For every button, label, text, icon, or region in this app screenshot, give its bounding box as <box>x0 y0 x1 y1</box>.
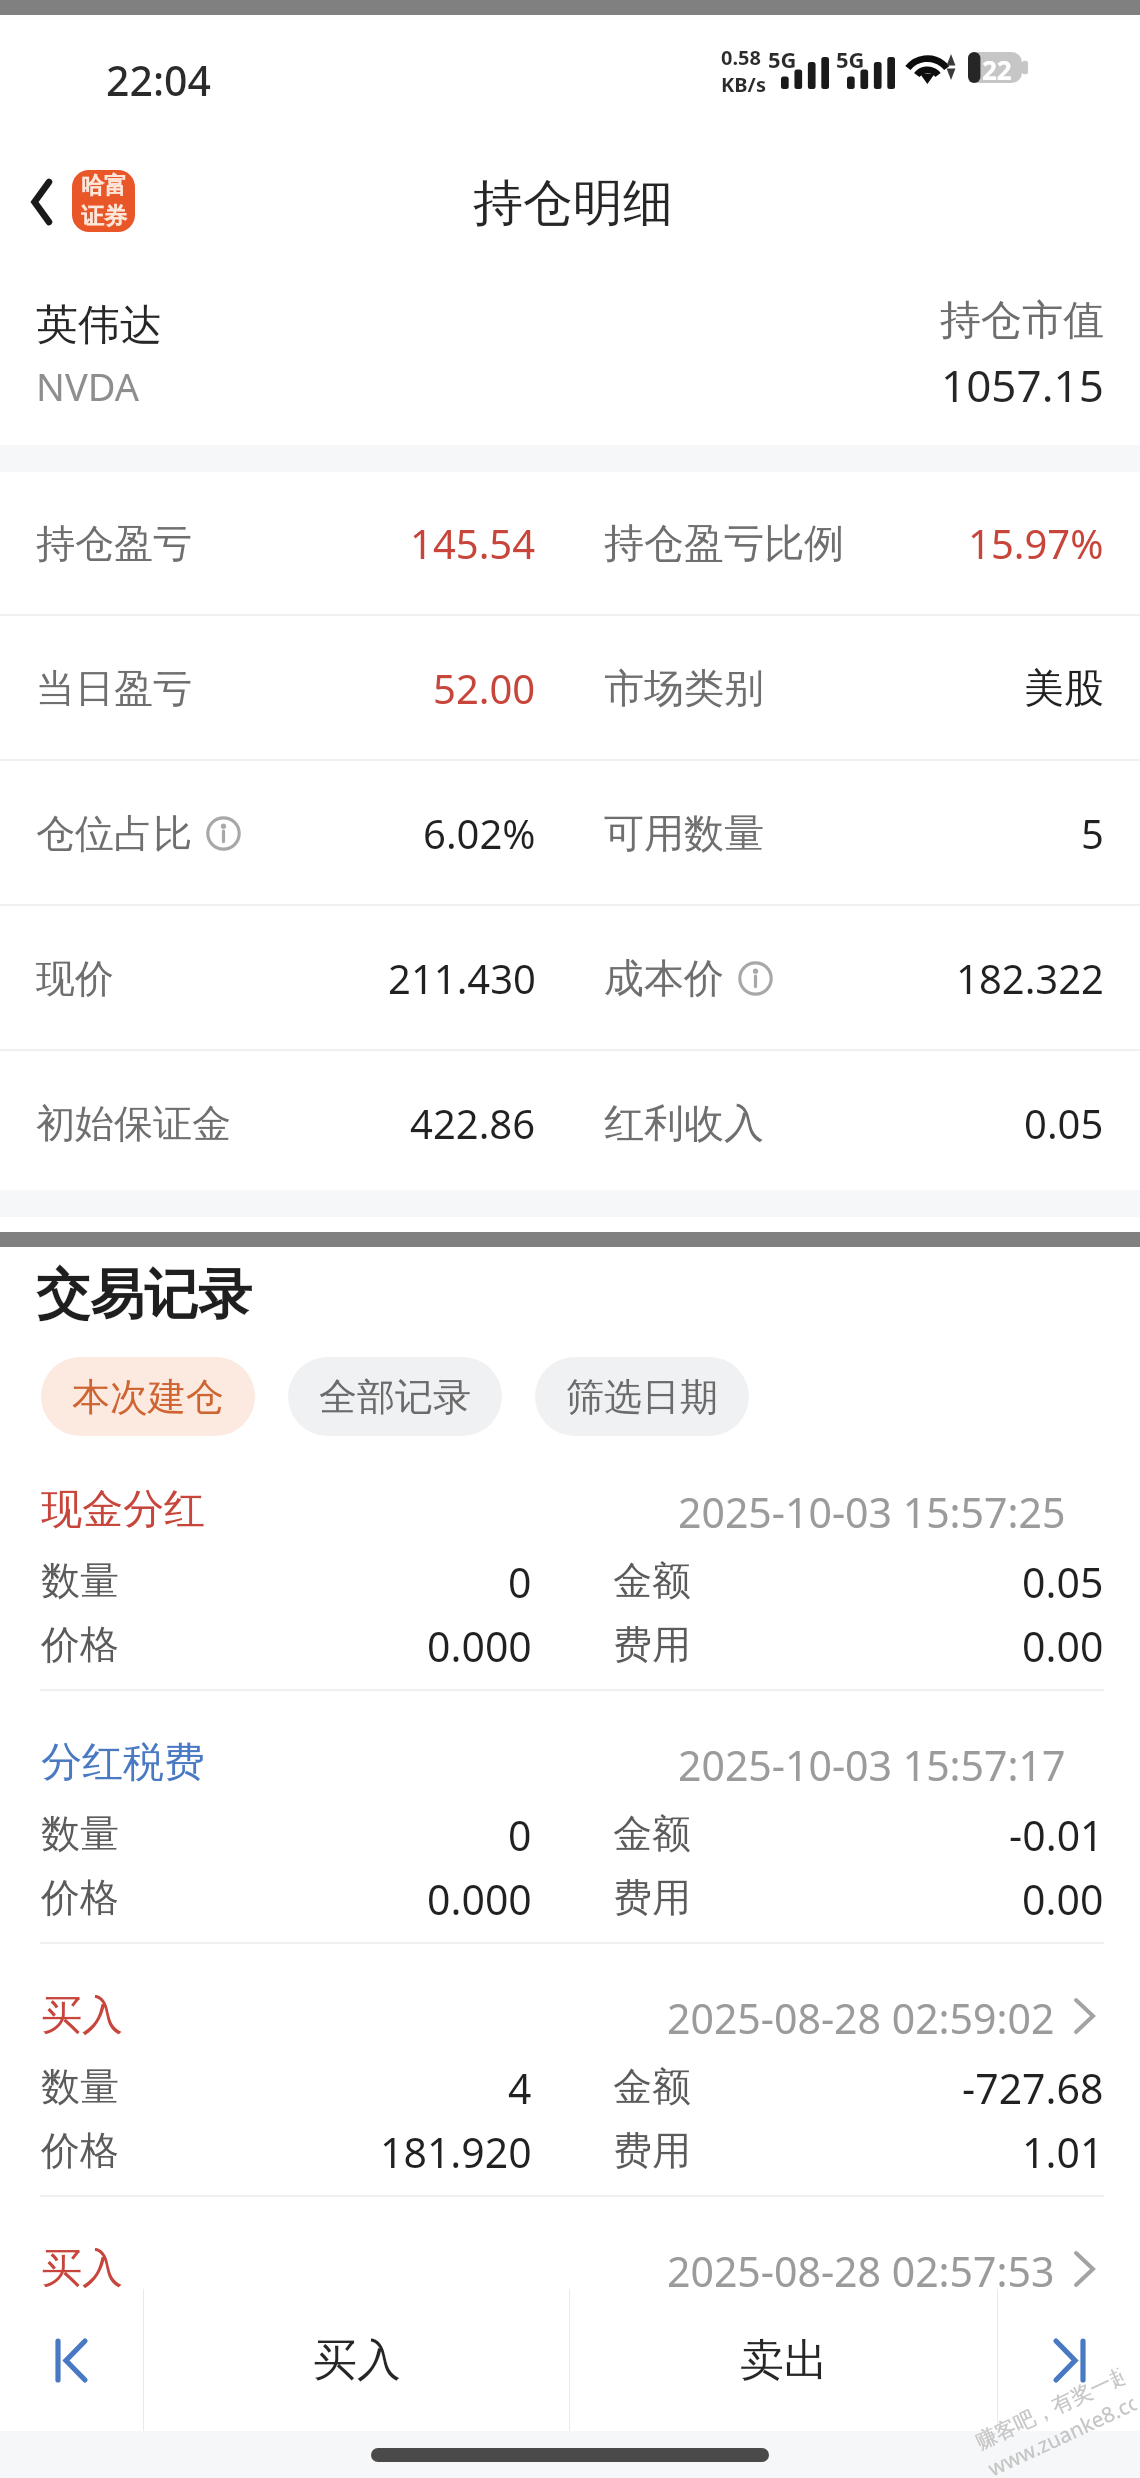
button[interactable]: 买入 <box>144 2289 569 2431</box>
staticText: 现金分红 <box>41 1484 205 1536</box>
staticText: 0.000 <box>427 1871 532 1923</box>
button[interactable]: 分红税费 <box>0 1737 1140 1990</box>
staticText: 0.00 <box>1022 1871 1104 1923</box>
staticText: 145.54 <box>410 516 536 570</box>
staticText: 费用 <box>613 2126 691 2175</box>
staticText: 全部记录 <box>319 1373 471 1421</box>
button[interactable]: Hafu Securities <box>72 170 135 232</box>
staticText: 初始保证金 <box>36 1099 231 1148</box>
staticText: 2025-10-03 15:57:25 <box>678 1484 1066 1536</box>
staticText: 费用 <box>613 1620 691 1669</box>
staticText: 0.05 <box>1024 1096 1104 1150</box>
staticText: 金额 <box>613 1809 691 1858</box>
staticText: 2025-08-28 02:57:53 <box>667 2243 1055 2295</box>
staticText: 0 <box>508 1554 532 1606</box>
staticText: 证券 <box>81 202 127 231</box>
staticText: 持仓盈亏 <box>36 519 192 568</box>
staticText: 仓位占比 <box>36 809 192 858</box>
staticText: 182.322 <box>956 951 1104 1005</box>
staticText: 181.920 <box>380 2124 532 2176</box>
button[interactable]: Last page <box>998 2289 1140 2431</box>
staticText: 0.000 <box>427 1618 532 1670</box>
staticText: 4 <box>508 2060 532 2112</box>
button[interactable]: 买入 <box>0 1990 1140 2243</box>
staticText: 买入 <box>313 2333 401 2388</box>
staticText: 数量 <box>41 1556 119 1605</box>
staticText: 买入 <box>41 1990 123 2042</box>
staticText: 英伟达 <box>36 299 162 352</box>
staticText: www.zuanke8.com <box>983 2389 1140 2478</box>
staticText: 22:04 <box>106 52 211 108</box>
staticText: 211.430 <box>388 951 536 1005</box>
staticText: 2025-10-03 15:57:17 <box>678 1737 1066 1789</box>
staticText: 价格 <box>41 2126 119 2175</box>
staticText: 交易记录 <box>36 1261 252 1329</box>
staticText: 持仓明细 <box>473 172 673 235</box>
button[interactable]: 卖出 <box>570 2289 997 2431</box>
staticText: 赚客吧，有奖一起赚！ <box>971 2364 1127 2455</box>
staticText: 22 <box>982 52 1012 83</box>
staticText: 金额 <box>613 2062 691 2111</box>
staticText: 分红税费 <box>41 1737 205 1789</box>
staticText: 422.86 <box>410 1096 536 1150</box>
staticText: 1.01 <box>1022 2124 1104 2176</box>
staticText: 金额 <box>613 1556 691 1605</box>
staticText: 0.58 <box>721 44 761 71</box>
staticText: 当日盈亏 <box>36 664 192 713</box>
staticText: 美股 <box>1024 663 1104 713</box>
staticText: 5G <box>768 44 797 74</box>
staticText: 52.00 <box>433 661 536 715</box>
button[interactable]: 买入 <box>0 2243 1140 2295</box>
staticText: 1057.15 <box>941 355 1104 415</box>
staticText: 红利收入 <box>604 1098 764 1148</box>
staticText: -727.68 <box>962 2060 1104 2112</box>
staticText: 0.05 <box>1022 1554 1104 1606</box>
staticText: 筛选日期 <box>566 1373 718 1421</box>
staticText: 数量 <box>41 1809 119 1858</box>
staticText: 卖出 <box>740 2333 828 2388</box>
staticText: 市场类别 <box>604 663 764 713</box>
button[interactable]: 筛选日期 <box>535 1357 749 1436</box>
staticText: 2025-08-28 02:59:02 <box>667 1990 1055 2042</box>
staticText: 15.97% <box>968 516 1104 570</box>
staticText: 本次建仓 <box>72 1373 224 1421</box>
button[interactable]: 本次建仓 <box>41 1357 255 1436</box>
staticText: 价格 <box>41 1873 119 1922</box>
staticText: 可用数量 <box>604 808 764 858</box>
staticText: 0 <box>508 1807 532 1859</box>
staticText: 0.00 <box>1022 1618 1104 1670</box>
staticText: 持仓盈亏比例 <box>604 518 844 568</box>
staticText: -0.01 <box>1009 1807 1104 1859</box>
staticText: 成本价 <box>604 953 724 1003</box>
staticText: 哈富 <box>81 171 127 200</box>
staticText: 持仓市值 <box>940 295 1104 347</box>
staticText: 价格 <box>41 1620 119 1669</box>
button[interactable]: Back <box>9 155 73 249</box>
staticText: 5 <box>1081 806 1104 860</box>
staticText: 5G <box>836 44 865 74</box>
staticText: NVDA <box>36 360 139 412</box>
staticText: 费用 <box>613 1873 691 1922</box>
staticText: 买入 <box>41 2243 123 2295</box>
button[interactable]: 现金分红 <box>0 1484 1140 1737</box>
staticText: 6.02% <box>423 806 536 860</box>
button[interactable]: 全部记录 <box>288 1357 502 1436</box>
staticText: 现价 <box>36 954 114 1003</box>
staticText: 数量 <box>41 2062 119 2111</box>
staticText: KB/s <box>721 71 766 98</box>
button[interactable]: First page <box>0 2289 143 2431</box>
